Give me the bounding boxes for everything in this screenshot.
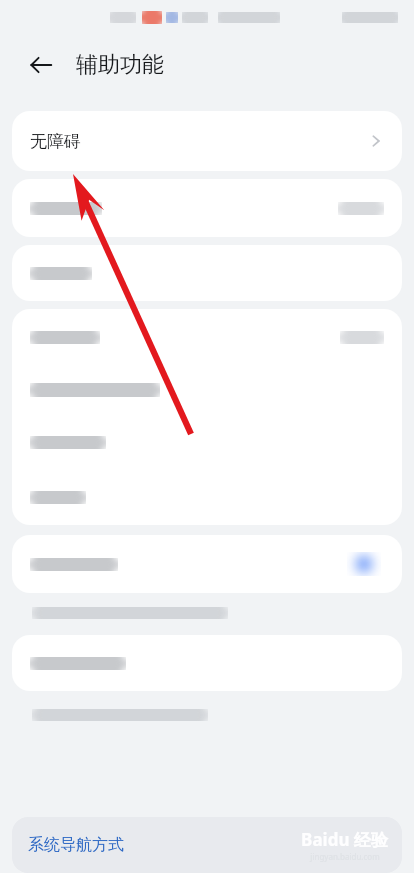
staticText: 无障碍 xyxy=(30,131,81,152)
button[interactable]: 系统导航方式 xyxy=(12,829,134,861)
button[interactable] xyxy=(12,245,402,301)
button[interactable] xyxy=(12,309,402,365)
button[interactable] xyxy=(12,179,402,237)
button[interactable] xyxy=(12,469,402,525)
button[interactable] xyxy=(12,535,402,593)
staticText: jingyan.baidu.com xyxy=(310,851,380,862)
staticText: 系统导航方式 xyxy=(28,835,124,855)
staticText: 辅助功能 xyxy=(76,51,164,79)
button[interactable]: 无障碍 xyxy=(12,111,402,171)
button[interactable] xyxy=(12,415,402,469)
button[interactable] xyxy=(12,365,402,415)
button[interactable] xyxy=(12,635,402,691)
button[interactable]: Back xyxy=(26,50,56,80)
staticText: Baidu 经验 xyxy=(301,828,388,851)
